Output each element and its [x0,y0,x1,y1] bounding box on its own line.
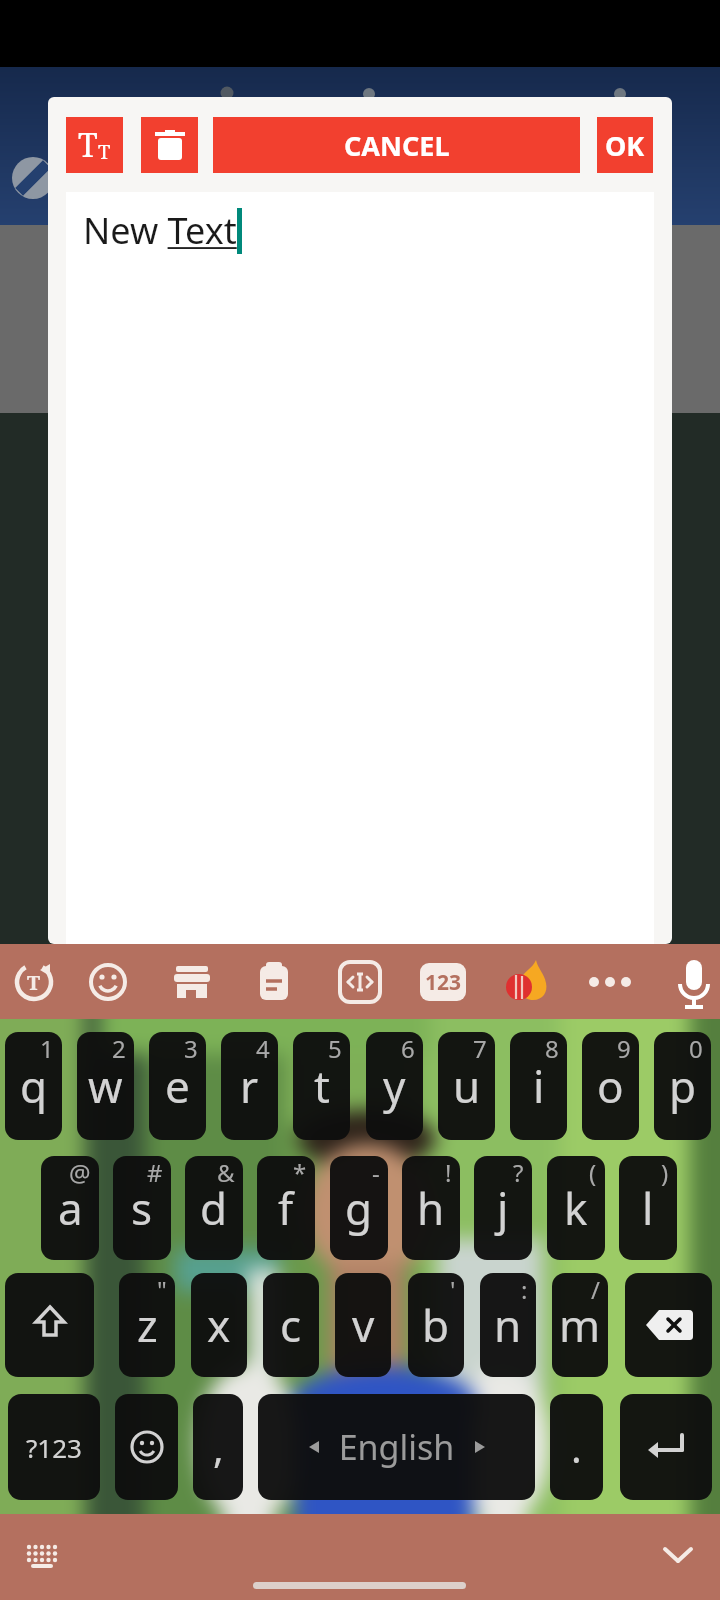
staticText: & [217,1156,235,1189]
button[interactable]: 123 [419,958,467,1006]
staticText: 6 [401,1032,415,1065]
button[interactable]: 4 [221,1032,278,1140]
staticText: a [58,1178,83,1238]
button[interactable]: c [263,1273,319,1377]
button[interactable]: # [113,1156,171,1260]
button[interactable]: . [550,1394,603,1500]
button[interactable] [620,1394,712,1500]
staticText: i [533,1056,545,1116]
staticText: c [280,1295,302,1355]
button[interactable]: ) [619,1156,677,1260]
staticText: f [278,1178,294,1238]
staticText: 8 [545,1032,559,1065]
staticText: . [571,1420,582,1474]
button[interactable] [656,1534,700,1578]
staticText: u [453,1056,481,1116]
button[interactable]: " [119,1273,175,1377]
button[interactable] [670,956,718,1016]
staticText: p [669,1056,697,1116]
staticText: l [642,1178,654,1238]
button[interactable] [336,958,384,1006]
button[interactable] [115,1394,178,1500]
button[interactable]: @ [41,1156,99,1260]
staticText: 7 [473,1032,487,1065]
button[interactable]: - [330,1156,388,1260]
staticText: ? [513,1156,524,1189]
staticText: w [88,1056,123,1116]
button[interactable]: ' [408,1273,464,1377]
button[interactable]: ?123 [8,1394,100,1500]
staticText: 2 [112,1032,126,1065]
staticText: j [497,1178,509,1238]
staticText: English [321,1424,473,1470]
staticText: 9 [617,1032,631,1065]
button[interactable]: : [480,1273,536,1377]
staticText: n [494,1295,522,1355]
staticText: q [20,1056,48,1116]
staticText: y [383,1056,406,1116]
staticText: 4 [256,1032,270,1065]
button[interactable]: 7 [438,1032,495,1140]
staticText: 5 [328,1032,342,1065]
button[interactable] [20,1534,64,1578]
button[interactable]: * [257,1156,315,1260]
staticText: : [521,1273,528,1306]
staticText: ?123 [26,1430,82,1465]
staticText: 0 [689,1032,703,1065]
staticText: d [200,1178,228,1238]
button[interactable]: x [191,1273,247,1377]
staticText: OK [605,127,645,164]
button[interactable]: ? [474,1156,532,1260]
button[interactable]: English [258,1394,535,1500]
button[interactable]: 9 [582,1032,639,1140]
button[interactable]: , [193,1394,243,1500]
button[interactable]: 5 [293,1032,350,1140]
button[interactable]: ( [547,1156,605,1260]
staticText: v [352,1295,375,1355]
button[interactable]: / [552,1273,608,1377]
button[interactable]: 2 [77,1032,134,1140]
staticText: 1 [40,1032,54,1065]
button[interactable] [250,958,298,1006]
button[interactable]: & [185,1156,243,1260]
staticText: ! [445,1156,452,1189]
staticText: h [417,1178,445,1238]
staticText: r [240,1056,259,1116]
staticText: ' [450,1273,456,1306]
button[interactable]: 0 [654,1032,711,1140]
button[interactable] [141,117,198,173]
button[interactable] [625,1273,712,1377]
button[interactable]: T [10,958,58,1006]
button[interactable] [168,958,216,1006]
button[interactable]: CANCEL [213,117,580,173]
staticText: New Text [83,206,237,255]
button[interactable]: v [335,1273,391,1377]
staticText: ) [661,1156,669,1189]
button[interactable]: T [66,117,123,173]
button[interactable]: 6 [366,1032,423,1140]
staticText: b [422,1295,450,1355]
staticText: ( [589,1156,597,1189]
button[interactable]: 8 [510,1032,567,1140]
staticText: z [137,1295,158,1355]
button[interactable] [5,1273,94,1377]
staticText: k [564,1178,588,1238]
staticText: / [591,1273,600,1306]
staticText: @ [69,1156,91,1189]
button[interactable]: 3 [149,1032,206,1140]
button[interactable]: 1 [5,1032,62,1140]
staticText: T [98,138,111,165]
button[interactable] [84,958,132,1006]
staticText: x [207,1295,231,1355]
staticText: - [372,1156,380,1189]
button[interactable]: ! [402,1156,460,1260]
button[interactable] [586,958,634,1006]
staticText: T [27,969,41,996]
staticText: o [597,1056,624,1116]
button[interactable] [501,958,549,1006]
staticText: t [314,1056,330,1116]
staticText: 3 [184,1032,198,1065]
staticText: , [213,1420,224,1474]
button[interactable]: OK [597,117,653,173]
staticText: # [147,1156,163,1189]
